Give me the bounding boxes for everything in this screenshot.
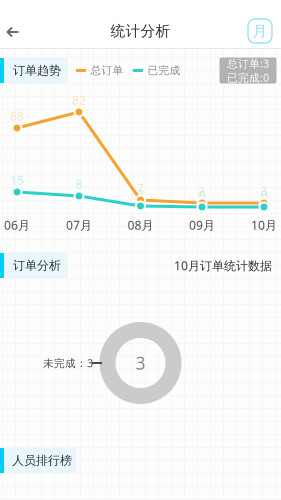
staticText: 统计分析	[110, 22, 170, 40]
staticText: 15	[10, 172, 24, 188]
staticText: 2	[137, 186, 144, 202]
staticText: 82	[72, 92, 86, 108]
staticText: 已完成:0	[227, 70, 269, 85]
staticText: 07月	[66, 217, 92, 233]
staticText: 10月	[251, 217, 277, 233]
staticText: 10月订单统计数据	[174, 257, 272, 273]
staticText: 8	[75, 176, 82, 192]
staticText: 3	[135, 351, 145, 374]
staticText: 未完成：3	[43, 356, 93, 370]
button[interactable]: Month filter	[248, 19, 272, 43]
staticText: 09月	[189, 217, 215, 233]
staticText: 人员排行榜	[12, 453, 72, 468]
staticText: 08月	[127, 217, 153, 233]
staticText: 0	[198, 187, 205, 203]
staticText: 总订单:3	[227, 56, 269, 70]
staticText: 7	[137, 180, 144, 196]
staticText: 订单趋势	[13, 63, 61, 78]
staticText: 3	[260, 183, 267, 199]
staticText: 总订单	[90, 64, 123, 77]
staticText: 订单分析	[13, 258, 61, 273]
staticText: 已完成	[147, 64, 180, 77]
staticText: 68	[10, 108, 24, 124]
staticText: 2	[198, 183, 205, 199]
staticText: 月	[252, 22, 267, 40]
staticText: 06月	[4, 217, 30, 233]
button[interactable]: Back	[0, 12, 28, 52]
staticText: 0	[260, 187, 267, 203]
